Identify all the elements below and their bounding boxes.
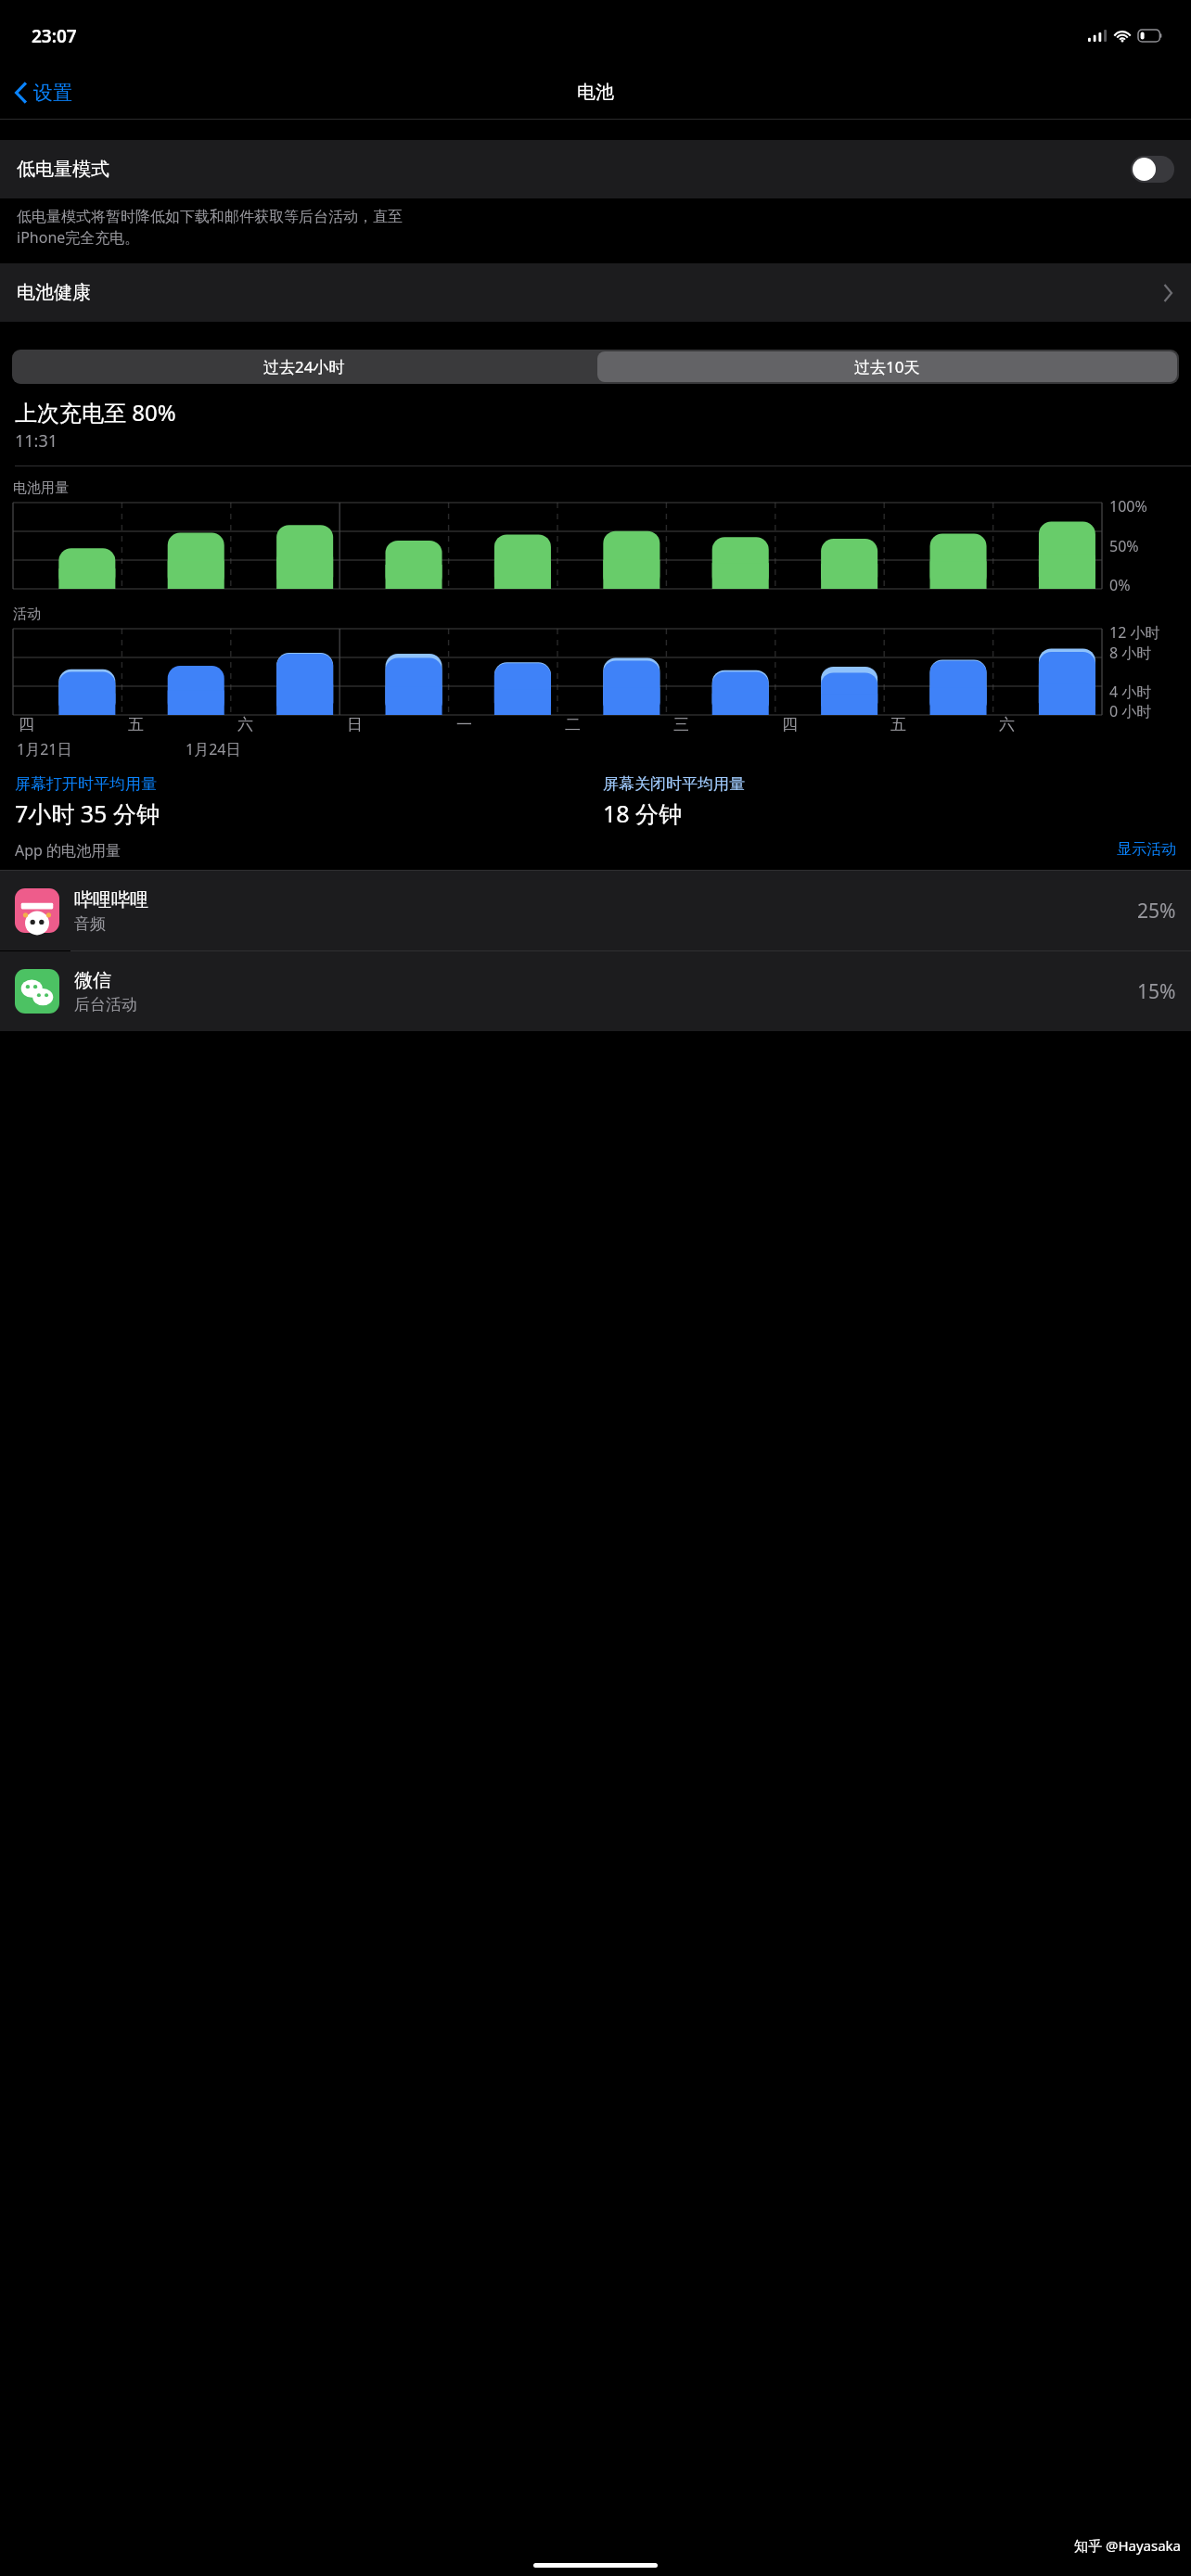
staticText: 过去24小时	[263, 356, 345, 377]
button[interactable]: 低电量模式开关	[1131, 156, 1174, 183]
staticText: 一	[456, 715, 472, 734]
staticText: 低电量模式	[17, 158, 109, 181]
button[interactable]: 屏幕打开时平均用量	[15, 774, 603, 829]
staticText: 设置	[33, 81, 72, 105]
staticText: 上次充电至 80%	[15, 397, 176, 427]
staticText: 7小时 35 分钟	[15, 797, 160, 829]
staticText: 15%	[1137, 978, 1176, 1005]
staticText: 日	[347, 715, 363, 734]
button[interactable]: 过去10天	[597, 351, 1177, 382]
staticText: 25%	[1137, 898, 1176, 925]
staticText: 18 分钟	[603, 797, 683, 829]
staticText: 四	[19, 715, 34, 734]
button[interactable]: 哔哩哔哩	[0, 871, 1191, 950]
staticText: 后台活动	[74, 995, 137, 1014]
staticText: 显示活动	[1117, 840, 1176, 859]
staticText: 23:07	[32, 24, 77, 48]
button[interactable]: 电池健康	[0, 263, 1191, 322]
button[interactable]: 微信	[0, 951, 1191, 1031]
staticText: 二	[565, 715, 581, 734]
staticText: 11:31	[15, 429, 58, 453]
button[interactable]: 设置	[0, 66, 83, 119]
staticText: 0%	[1109, 575, 1131, 595]
staticText: 100%	[1109, 496, 1147, 516]
staticText: 1月24日	[186, 739, 241, 759]
staticText: 50%	[1109, 536, 1139, 556]
staticText: 四	[782, 715, 798, 734]
staticText: App 的电池用量	[15, 840, 122, 861]
staticText: 过去10天	[854, 356, 920, 377]
staticText: 微信	[74, 969, 111, 992]
button[interactable]: 低电量模式	[0, 140, 1191, 198]
staticText: 音频	[74, 914, 106, 934]
staticText: 0 小时	[1109, 701, 1152, 721]
staticText: 1月21日	[17, 739, 72, 759]
button[interactable]: 过去24小时	[12, 350, 595, 384]
staticText: 电池健康	[17, 281, 91, 304]
staticText: 五	[890, 715, 906, 734]
staticText: 电池	[577, 81, 614, 104]
staticText: 六	[999, 715, 1015, 734]
button[interactable]: 屏幕关闭时平均用量	[603, 774, 1191, 829]
staticText: 活动	[13, 606, 41, 623]
staticText: 低电量模式将暂时降低如下载和邮件获取等后台活动，直至 iPhone完全充电。	[17, 208, 403, 248]
staticText: 三	[673, 715, 689, 734]
staticText: 8 小时	[1109, 643, 1152, 663]
staticText: 4 小时	[1109, 682, 1152, 702]
staticText: 12 小时	[1109, 622, 1160, 643]
staticText: 五	[128, 715, 144, 734]
staticText: 屏幕关闭时平均用量	[603, 774, 745, 794]
staticText: 六	[237, 715, 253, 734]
button[interactable]: 显示活动	[1117, 840, 1176, 859]
staticText: 电池用量	[13, 479, 69, 497]
staticText: 屏幕打开时平均用量	[15, 774, 157, 794]
staticText: 知乎 @Hayasaka	[1074, 2536, 1182, 2555]
staticText: 哔哩哔哩	[74, 888, 148, 912]
